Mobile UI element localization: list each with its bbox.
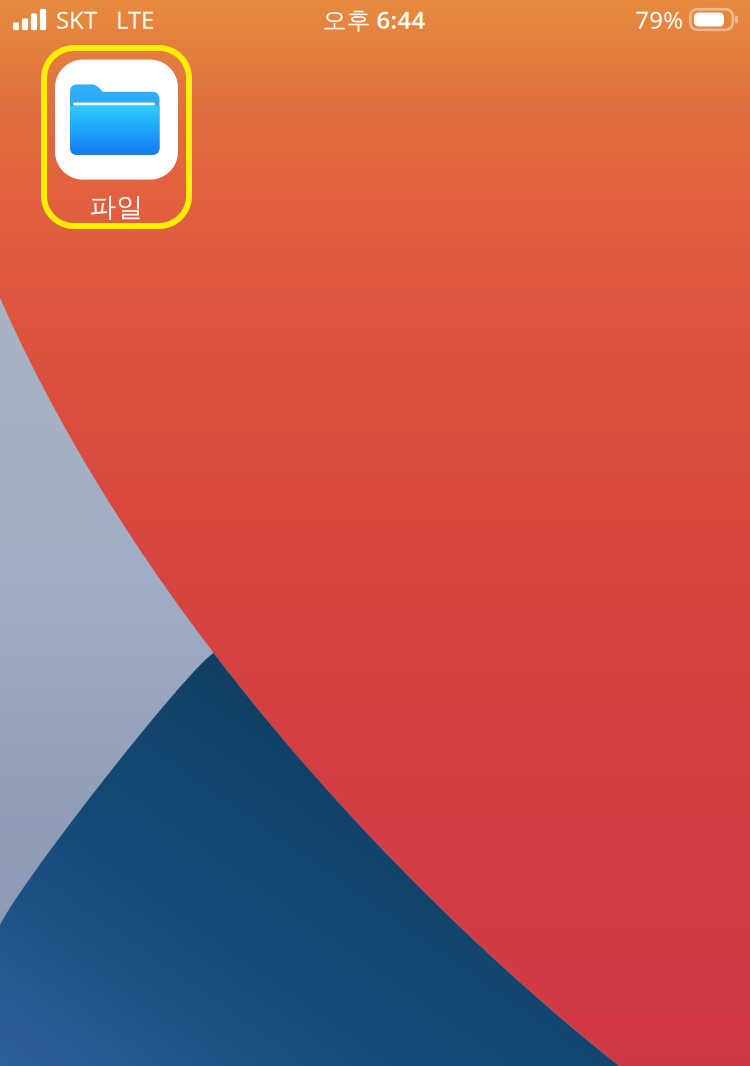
- staticText: 79%: [635, 4, 683, 35]
- staticText: 파일: [89, 191, 143, 223]
- staticText: SKT: [56, 4, 97, 35]
- staticText: 오후 6:44: [322, 4, 425, 35]
- button[interactable]: 파일: [44, 48, 189, 226]
- staticText: LTE: [116, 4, 154, 35]
